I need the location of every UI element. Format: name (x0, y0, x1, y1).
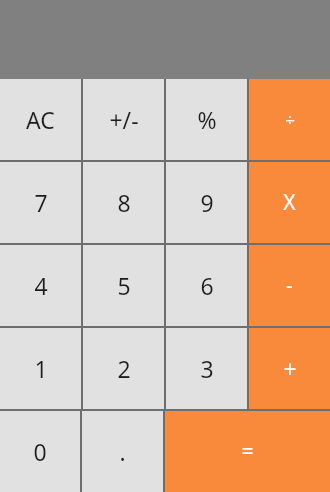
button[interactable]: Multiply (249, 162, 330, 243)
staticText: 9 (200, 187, 214, 218)
button[interactable]: 9 (166, 162, 247, 243)
staticText: 0 (33, 436, 47, 467)
staticText: 5 (117, 270, 131, 301)
staticText: = (241, 437, 254, 466)
button[interactable]: 3 (166, 328, 247, 409)
button[interactable]: 2 (83, 328, 164, 409)
button[interactable]: 1 (0, 328, 81, 409)
button[interactable]: 5 (83, 245, 164, 326)
button[interactable]: 6 (166, 245, 247, 326)
staticText: 1 (34, 353, 48, 384)
staticText: +/- (109, 104, 139, 135)
button[interactable]: Equals (165, 411, 330, 492)
staticText: 4 (34, 270, 48, 301)
button[interactable]: 7 (0, 162, 81, 243)
staticText: . (119, 436, 126, 467)
button[interactable]: . (82, 411, 163, 492)
button[interactable]: Divide (249, 79, 330, 160)
button[interactable]: +/- (83, 79, 164, 160)
staticText: % (197, 104, 217, 135)
staticText: X (283, 188, 296, 217)
staticText: 8 (117, 187, 131, 218)
staticText: + (283, 353, 297, 384)
staticText: 3 (200, 353, 214, 384)
staticText: 2 (117, 353, 131, 384)
staticText: - (286, 271, 293, 300)
staticText: 7 (34, 187, 48, 218)
button[interactable]: Plus (249, 328, 330, 409)
button[interactable]: 0 (0, 411, 80, 492)
button[interactable]: AC (0, 79, 81, 160)
button[interactable]: 4 (0, 245, 81, 326)
staticText: AC (26, 104, 55, 135)
staticText: ÷ (285, 108, 295, 131)
button[interactable]: % (166, 79, 247, 160)
button[interactable]: Minus (249, 245, 330, 326)
button[interactable]: 8 (83, 162, 164, 243)
staticText: 6 (200, 270, 214, 301)
